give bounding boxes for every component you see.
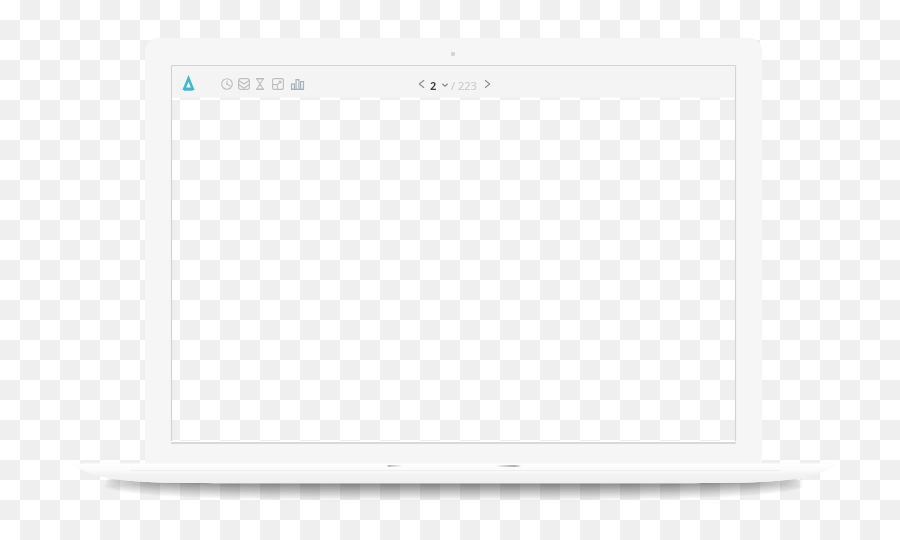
button[interactable]: Expand: [272, 78, 284, 90]
button[interactable]: Previous page: [415, 77, 428, 91]
button[interactable]: Pending: [256, 78, 264, 90]
button[interactable]: Choose page: [441, 79, 449, 90]
button[interactable]: Recent: [221, 78, 233, 90]
button[interactable]: Next page: [481, 77, 494, 91]
staticText: 2: [430, 78, 437, 91]
button[interactable]: Tool logo: [183, 77, 194, 91]
button[interactable]: Inbox: [238, 78, 250, 90]
staticText: / 223: [451, 78, 477, 91]
button[interactable]: Statistics: [291, 78, 304, 90]
